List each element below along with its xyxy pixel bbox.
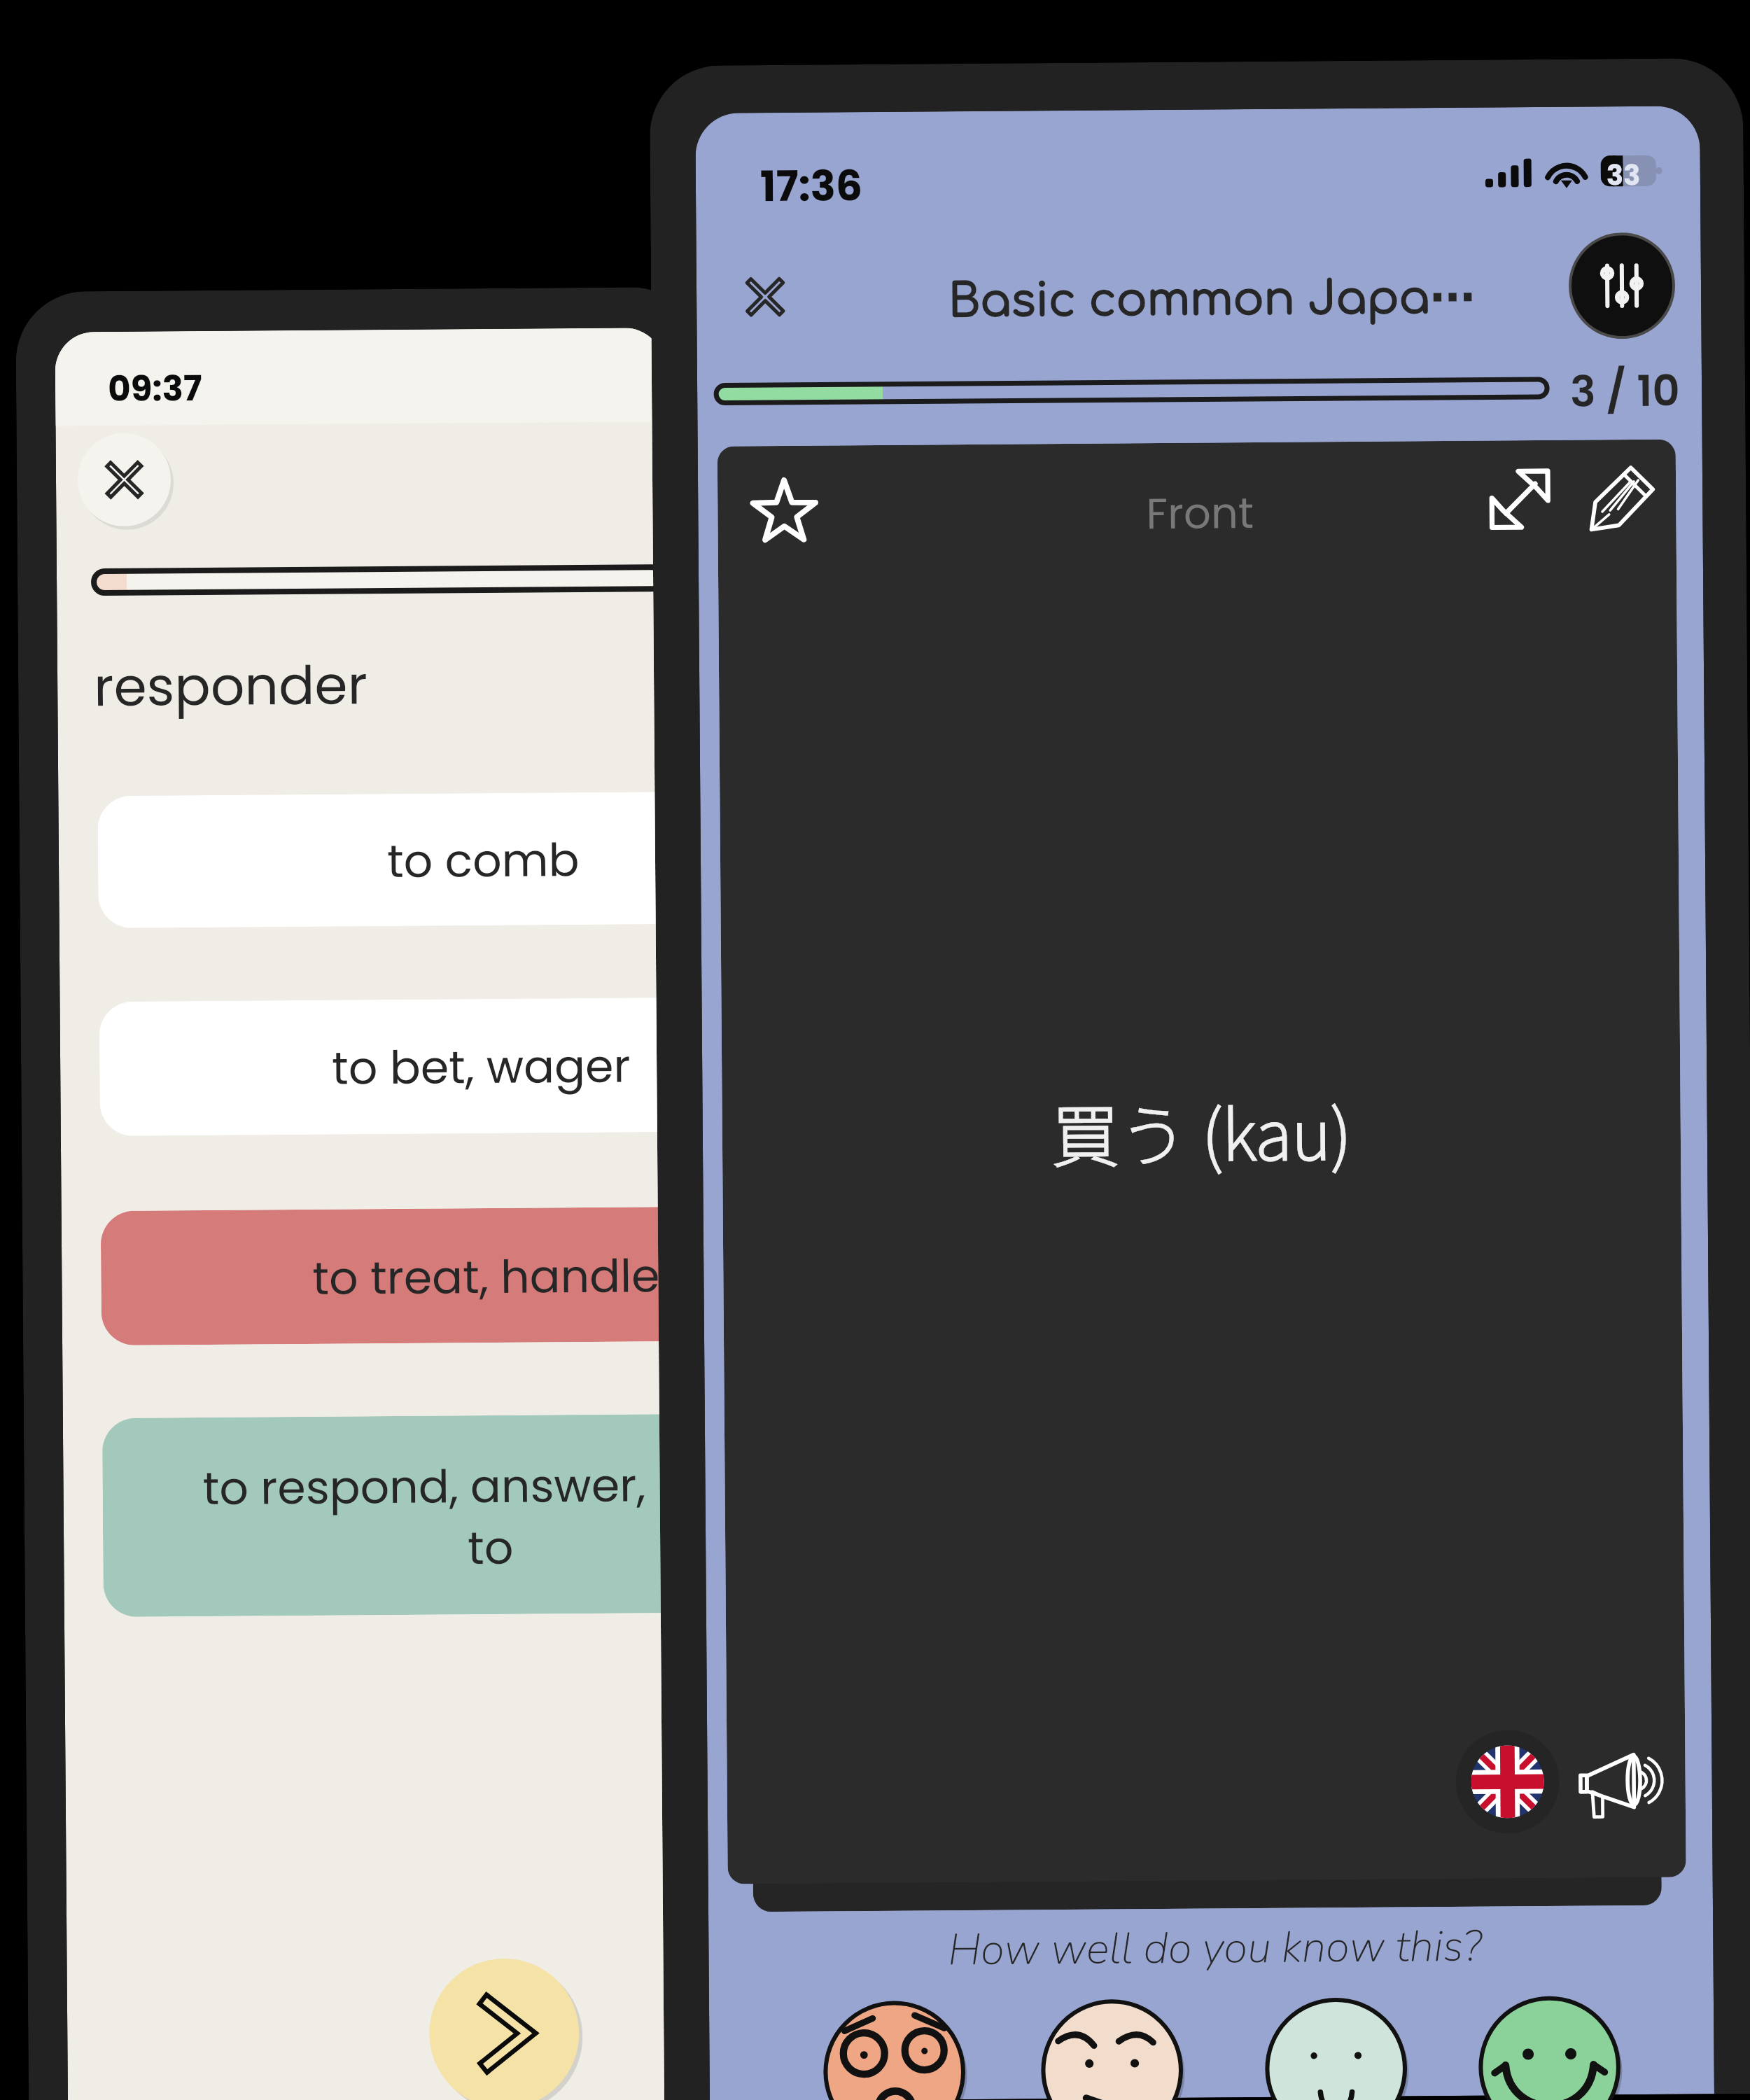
staticText: How well do you know this? (948, 1916, 1482, 1980)
staticText: 33 (1606, 155, 1641, 195)
button[interactable]: Next (429, 1958, 580, 2100)
button[interactable]: Rating 2 (1036, 1994, 1188, 2100)
button[interactable] (717, 439, 1686, 1884)
button[interactable]: to bet, wager (99, 996, 881, 1136)
button[interactable]: Settings (1571, 235, 1673, 336)
staticText: Basic common Japa⋯ (948, 271, 1476, 328)
button[interactable]: Language (1455, 1730, 1560, 1834)
staticText: to bet, wager (332, 1034, 631, 1100)
button[interactable]: to comb (98, 790, 879, 928)
staticText: to respond, answer, (202, 1453, 646, 1520)
staticText: to (468, 1516, 514, 1580)
button[interactable]: to treat, handle (101, 1205, 882, 1345)
staticText: 買う (kau) (1051, 1080, 1352, 1180)
staticText: 3 / 10 (1570, 361, 1680, 421)
button[interactable]: Favourite (749, 478, 819, 548)
button[interactable]: to respond, answer, (102, 1413, 884, 1617)
button[interactable]: Close (77, 433, 171, 527)
button[interactable]: Rating 4 (1473, 1991, 1626, 2100)
button[interactable]: Rating 3 (1260, 1992, 1412, 2100)
button[interactable]: Play audio (1579, 1744, 1658, 1823)
staticText: 17:36 (760, 156, 863, 216)
button[interactable]: Expand (1485, 464, 1555, 535)
staticText: to comb (387, 828, 580, 893)
button[interactable]: Edit (1588, 463, 1657, 532)
staticText: responder (94, 648, 368, 724)
button[interactable]: Rating 1 (818, 1996, 971, 2100)
staticText: to treat, handle (312, 1244, 661, 1310)
staticText: Front (1146, 483, 1254, 533)
staticText: 09:37 (108, 364, 203, 414)
button[interactable]: Close (722, 254, 808, 340)
